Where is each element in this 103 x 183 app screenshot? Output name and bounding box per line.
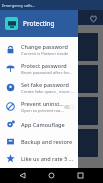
button[interactable]: Set fake password bbox=[0, 78, 78, 97]
button[interactable]: Change password bbox=[0, 40, 78, 59]
staticText: >> bbox=[49, 108, 55, 115]
button[interactable]: Like us and rate 5 stars bbox=[0, 150, 78, 167]
staticText: >> bbox=[49, 140, 55, 147]
staticText: Open to prevent malicious uni.. bbox=[21, 108, 64, 114]
staticText: Prevent uninstall bbox=[21, 100, 64, 107]
button[interactable]: Home bbox=[45, 169, 58, 182]
button[interactable]: Favorite bbox=[87, 12, 99, 24]
staticText: Protect password bbox=[21, 62, 67, 69]
button[interactable]: Recents bbox=[74, 169, 87, 182]
staticText: Create fake space , more safer bbox=[21, 89, 75, 95]
staticText: Set fake password bbox=[21, 81, 69, 88]
staticText: App Camouflage bbox=[21, 121, 65, 128]
button[interactable]: >> bbox=[5, 129, 98, 157]
button[interactable]: App Camouflage bbox=[0, 116, 78, 133]
button[interactable]: Toggle prevent uninstall bbox=[64, 104, 75, 110]
button[interactable]: Back bbox=[16, 169, 29, 182]
staticText: Like us and rate 5 stars bbox=[21, 155, 75, 162]
staticText: >> bbox=[49, 44, 55, 51]
staticText: Backup and restore bbox=[21, 138, 73, 145]
staticText: Emergency calls... bbox=[2, 3, 36, 8]
button[interactable]: >> bbox=[5, 97, 98, 125]
staticText: Reset password after forget bbox=[21, 70, 75, 76]
staticText: Protecting bbox=[23, 19, 55, 28]
button[interactable]: >> bbox=[5, 33, 98, 61]
button[interactable]: Protect password bbox=[0, 59, 78, 78]
button[interactable]: Prevent uninstall bbox=[0, 97, 78, 116]
button[interactable]: Protecting bbox=[0, 10, 78, 37]
staticText: Change password bbox=[21, 43, 68, 50]
staticText: Current is Pattern mode bbox=[21, 51, 69, 57]
button[interactable]: Backup and restore bbox=[0, 133, 78, 150]
button[interactable]: >> bbox=[5, 65, 98, 93]
